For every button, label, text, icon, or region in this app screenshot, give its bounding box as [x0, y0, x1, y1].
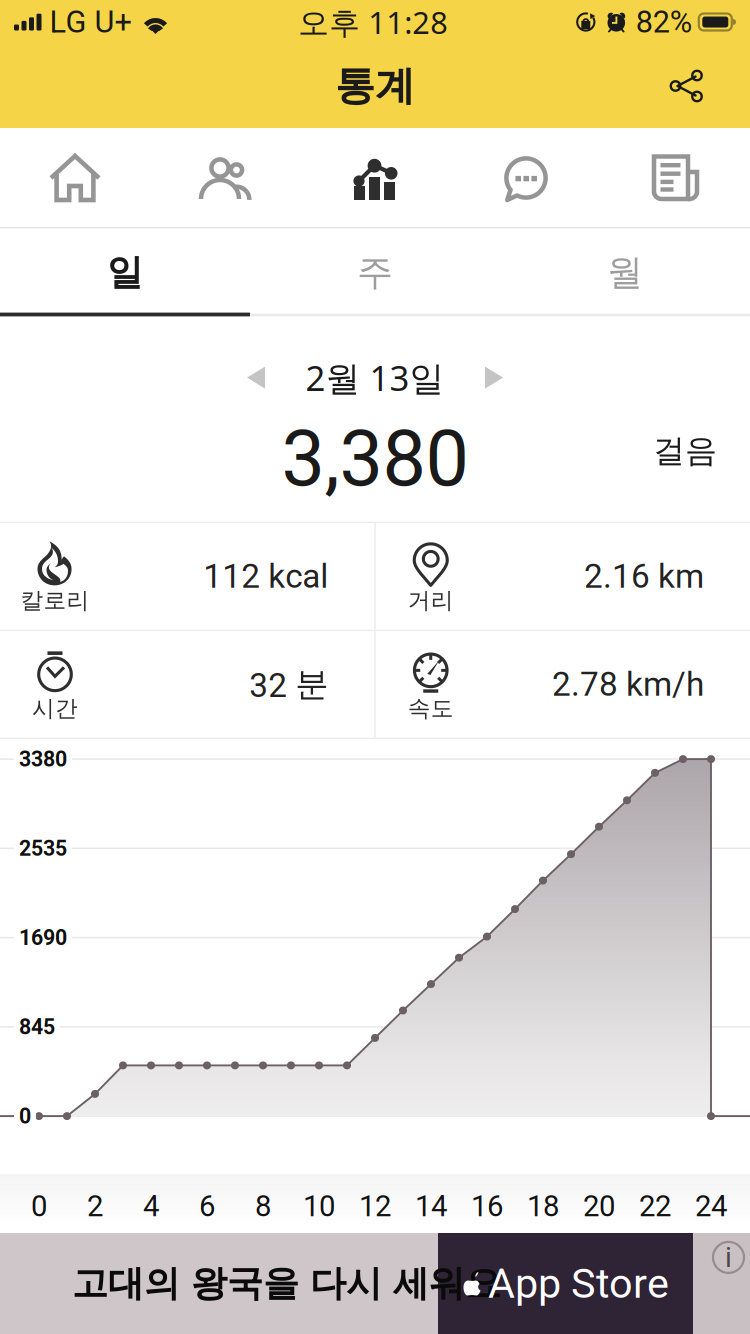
staticText: 일	[107, 250, 143, 295]
staticText: 고대의 왕국을 다시 세워요	[72, 1261, 501, 1306]
staticText: 0	[19, 1104, 31, 1129]
button[interactable]: Home	[0, 128, 150, 227]
button[interactable]: 주	[250, 229, 500, 317]
staticText: 845	[19, 1014, 55, 1039]
staticText: 2535	[19, 836, 67, 861]
staticText: 112 kcal	[203, 557, 328, 596]
staticText: 12	[359, 1189, 391, 1223]
button[interactable]: 시간	[0, 631, 374, 738]
button[interactable]: 칼로리	[0, 523, 374, 630]
staticText: 20	[583, 1189, 615, 1223]
button[interactable]: 월	[500, 229, 750, 317]
staticText: 18	[527, 1189, 559, 1223]
staticText: 거리	[408, 586, 454, 615]
staticText: App Store	[488, 1259, 669, 1308]
staticText: 3380	[19, 747, 67, 772]
staticText: 시간	[32, 694, 78, 723]
button[interactable]: 일	[0, 229, 250, 317]
staticText: 16	[471, 1189, 503, 1223]
button[interactable]: Friends	[150, 128, 300, 227]
staticText: LG U+	[49, 4, 131, 40]
staticText: 2.78 km/h	[552, 665, 704, 704]
staticText: 2.16 km	[584, 557, 704, 596]
staticText: 8	[255, 1189, 271, 1223]
staticText: 3,380	[281, 414, 468, 504]
button[interactable]: 거리	[376, 523, 750, 630]
button[interactable]: News	[600, 128, 750, 227]
button[interactable]: Share	[646, 50, 750, 122]
staticText: 82%	[636, 4, 692, 40]
button[interactable]: Statistics	[300, 128, 450, 227]
staticText: 32 분	[249, 663, 328, 705]
staticText: 속도	[408, 694, 454, 723]
button[interactable]: Next day	[465, 353, 523, 403]
staticText: 6	[199, 1189, 215, 1223]
button[interactable]: Chat	[450, 128, 600, 227]
staticText: 24	[695, 1189, 727, 1223]
staticText: 4	[143, 1189, 159, 1223]
staticText: 월	[607, 250, 643, 295]
staticText: 2월 13일	[305, 354, 444, 401]
staticText: 통계	[335, 61, 415, 111]
staticText: 주	[357, 250, 393, 295]
staticText: 칼로리	[20, 586, 89, 615]
button[interactable]: 속도	[376, 631, 750, 738]
staticText: 14	[415, 1189, 447, 1223]
button[interactable]: Advertisement	[0, 1233, 750, 1334]
staticText: 오후 11:28	[298, 1, 448, 43]
staticText: 0	[31, 1189, 47, 1223]
staticText: i	[725, 1241, 732, 1274]
staticText: 10	[303, 1189, 335, 1223]
staticText: 1690	[19, 925, 67, 950]
staticText: 2	[87, 1189, 103, 1223]
button[interactable]: Previous day	[227, 353, 285, 403]
staticText: 22	[639, 1189, 671, 1223]
staticText: 걸음	[653, 431, 717, 471]
